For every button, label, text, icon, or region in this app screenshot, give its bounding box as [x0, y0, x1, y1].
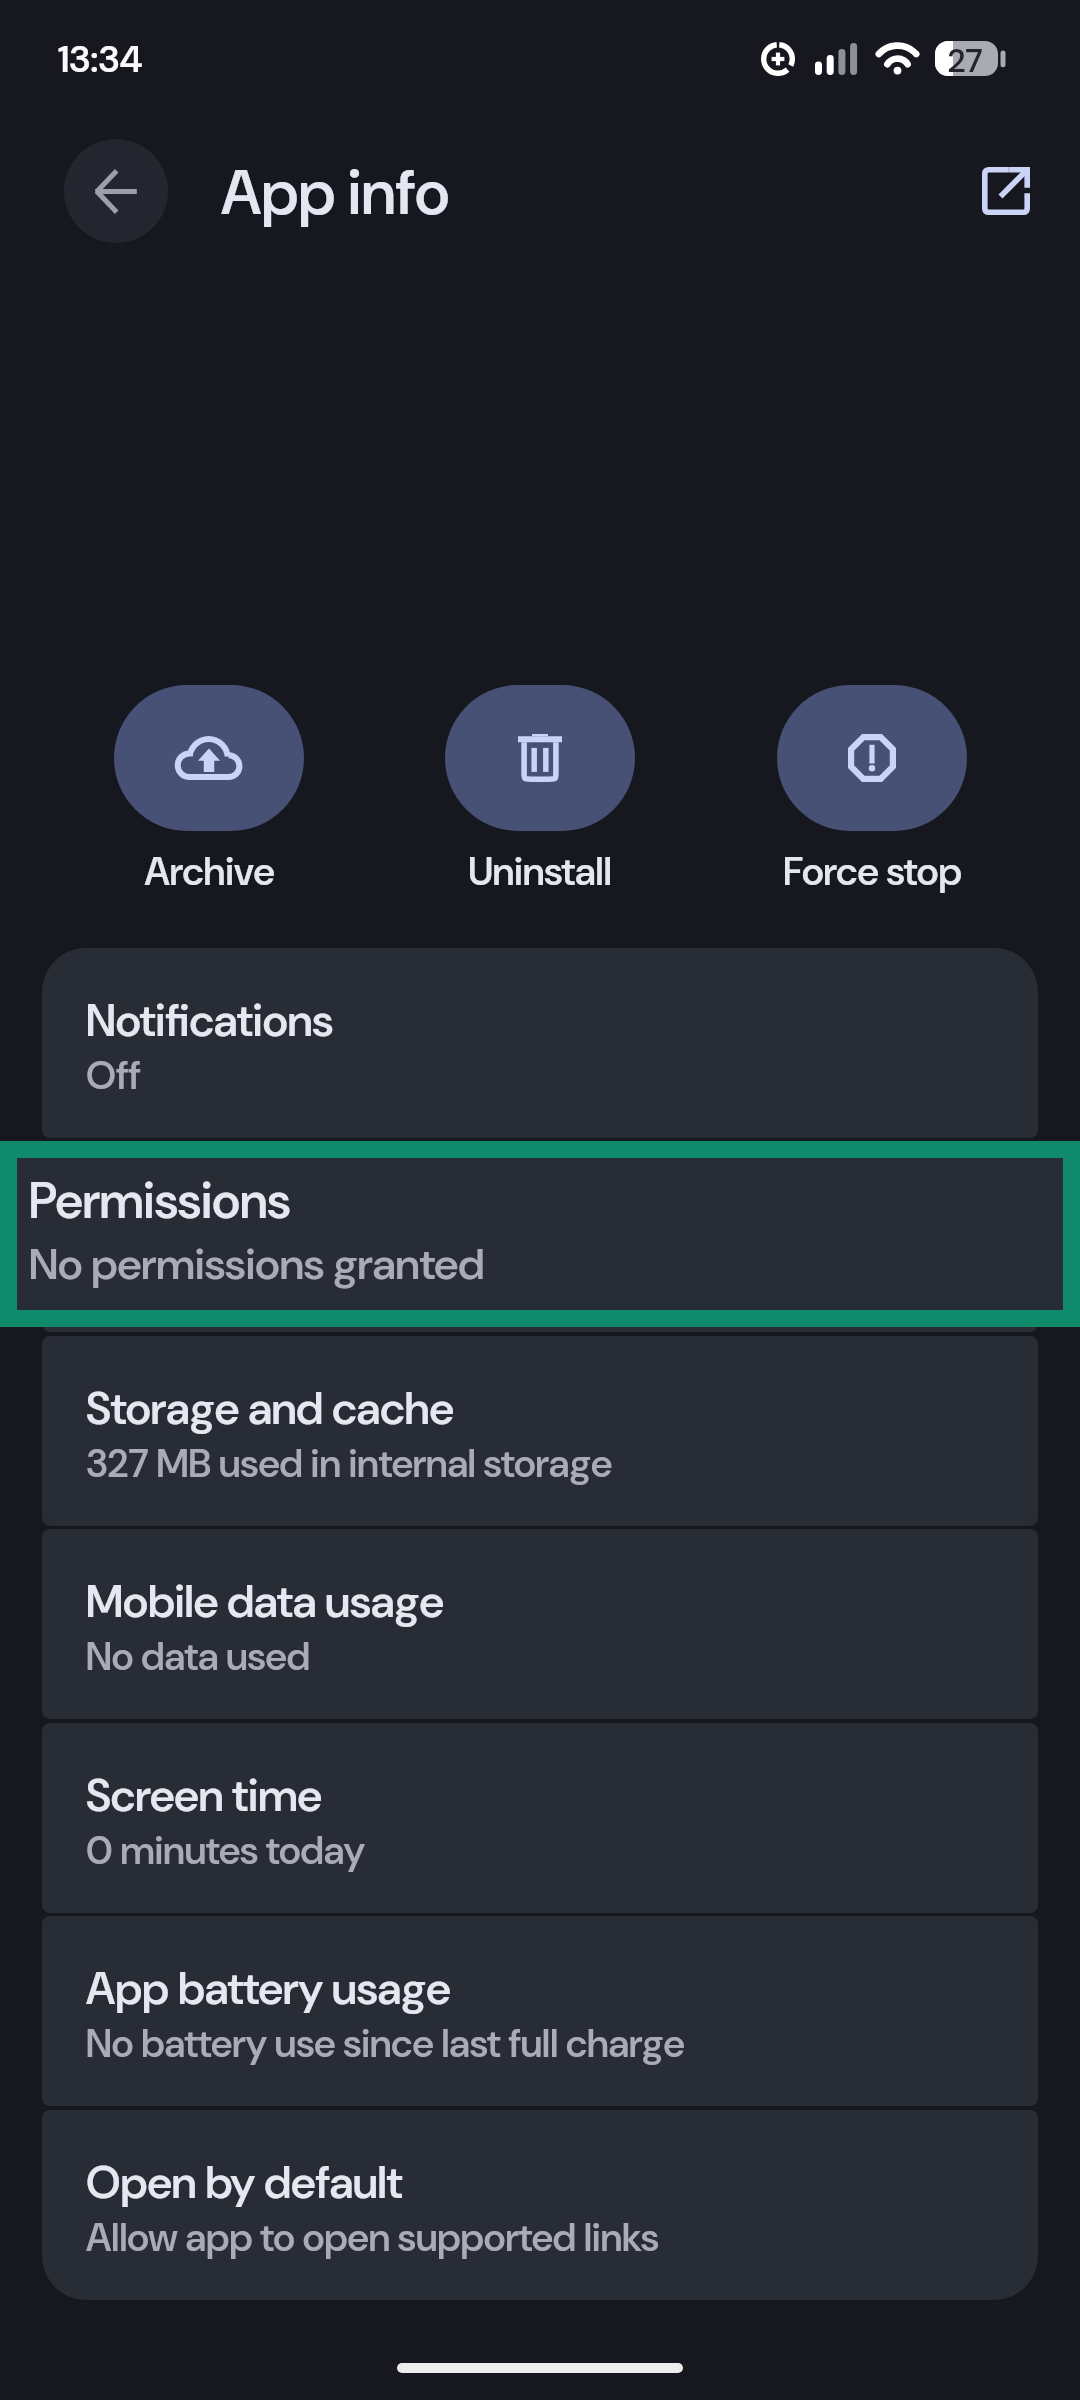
button[interactable]: Force stop [777, 685, 967, 831]
button[interactable]: Archive [114, 685, 304, 831]
staticText: App battery usage [86, 1959, 451, 2018]
staticText: Allow app to open supported links [86, 2212, 659, 2263]
staticText: Storage and cache [86, 1379, 454, 1438]
staticText: No data used [86, 1631, 311, 1682]
staticText: 0 minutes today [86, 1825, 366, 1876]
button[interactable]: Back [64, 139, 168, 243]
staticText: No permissions granted [86, 1244, 490, 1295]
button[interactable]: Open by default [42, 2110, 1038, 2300]
staticText: 327 MB used in internal storage [86, 1438, 613, 1489]
staticText: Uninstall [468, 846, 612, 897]
staticText: 27 [948, 39, 983, 82]
staticText: Mobile data usage [86, 1572, 444, 1631]
button[interactable]: App battery usage [42, 1916, 1038, 2106]
button[interactable]: Mobile data usage [42, 1529, 1038, 1719]
staticText: Force stop [783, 846, 962, 897]
staticText: App info [221, 152, 450, 233]
staticText: 13:34 [58, 34, 143, 83]
button[interactable]: Open app [958, 143, 1054, 239]
staticText: No permissions granted [29, 1235, 485, 1292]
button[interactable]: Notifications [42, 948, 1038, 1138]
button[interactable]: Screen time [42, 1723, 1038, 1913]
button[interactable]: Permissions [42, 1142, 1038, 1332]
staticText: Notifications [86, 991, 334, 1050]
button[interactable]: Storage and cache [42, 1336, 1038, 1526]
button[interactable]: Permissions [17, 1158, 1063, 1310]
staticText: Screen time [86, 1766, 322, 1825]
staticText: No battery use since last full charge [86, 2018, 685, 2069]
button[interactable]: Uninstall [445, 685, 635, 831]
staticText: Permissions [86, 1185, 322, 1244]
staticText: Archive [144, 846, 275, 897]
staticText: Open by default [86, 2153, 403, 2212]
staticText: Off [86, 1050, 141, 1101]
staticText: Permissions [29, 1168, 291, 1233]
